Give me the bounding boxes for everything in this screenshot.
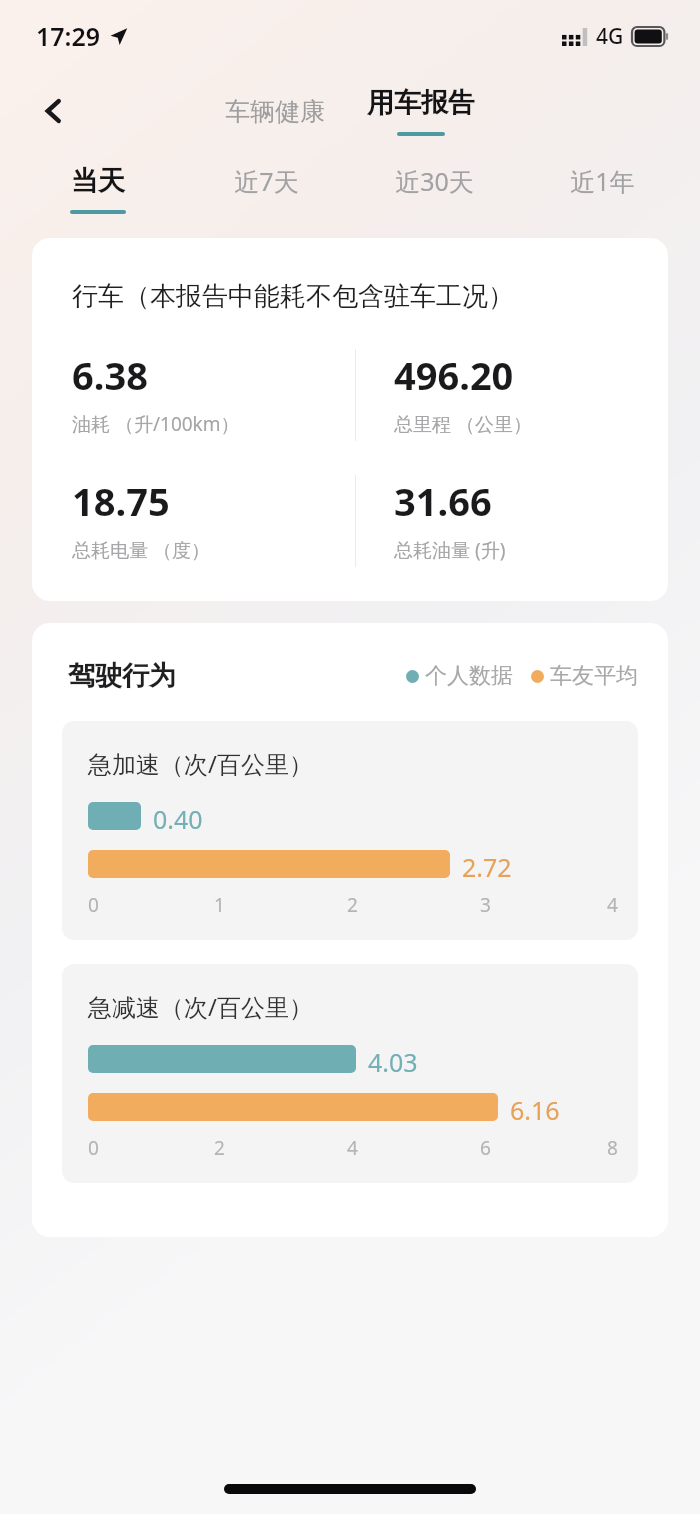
button[interactable]: 近7天 <box>182 164 350 214</box>
staticText: 6.16 <box>510 1093 560 1121</box>
staticText: 3 <box>480 892 491 918</box>
staticText: 4.03 <box>368 1045 418 1073</box>
staticText: 31.66 <box>394 475 492 527</box>
staticText: 油耗 （升/100km） <box>72 411 240 437</box>
button[interactable]: 车辆健康 <box>215 88 335 135</box>
staticText: 4 <box>607 892 618 918</box>
staticText: 驾驶行为 <box>68 659 176 693</box>
staticText: 近1年 <box>570 164 635 198</box>
staticText: 4G <box>596 22 624 51</box>
button[interactable]: 近30天 <box>350 164 518 214</box>
staticText: 2 <box>214 1135 225 1161</box>
staticText: 总耗油量 (升) <box>394 537 506 563</box>
staticText: 急加速（次/百公里） <box>88 747 313 780</box>
staticText: 496.20 <box>394 349 514 401</box>
staticText: 用车报告 <box>367 86 475 120</box>
button[interactable]: 当天 <box>14 164 182 214</box>
staticText: 近7天 <box>234 164 299 198</box>
staticText: 行车（本报告中能耗不包含驻车工况） <box>72 280 514 313</box>
staticText: 1 <box>214 892 225 918</box>
staticText: 8 <box>607 1135 618 1161</box>
staticText: 4 <box>347 1135 358 1161</box>
staticText: 18.75 <box>72 475 170 527</box>
button[interactable]: Back <box>26 83 82 139</box>
staticText: 近30天 <box>395 164 474 198</box>
button[interactable]: 近1年 <box>518 164 686 214</box>
staticText: 0.40 <box>153 802 203 830</box>
staticText: 2 <box>347 892 358 918</box>
staticText: 17:29 <box>36 19 101 53</box>
staticText: 0 <box>88 892 99 918</box>
staticText: 急减速（次/百公里） <box>88 990 313 1023</box>
staticText: 个人数据 <box>425 662 513 690</box>
staticText: 总里程 （公里） <box>394 411 532 437</box>
staticText: 当天 <box>71 164 125 198</box>
staticText: 6 <box>480 1135 491 1161</box>
staticText: 6.38 <box>72 349 148 401</box>
staticText: 车辆健康 <box>225 96 325 127</box>
staticText: 2.72 <box>462 850 512 878</box>
staticText: 总耗电量 （度） <box>72 537 210 563</box>
button[interactable]: 用车报告 <box>357 86 485 136</box>
staticText: 车友平均 <box>550 662 638 690</box>
staticText: 0 <box>88 1135 99 1161</box>
